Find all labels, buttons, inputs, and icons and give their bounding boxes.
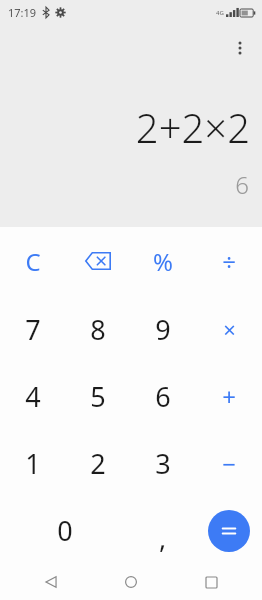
staticText: × — [223, 314, 236, 344]
button[interactable]: 2 — [65, 430, 130, 497]
staticText: 17:19 — [8, 5, 37, 20]
button[interactable]: 1 — [0, 430, 65, 497]
staticText: 2+2×2 — [135, 100, 250, 154]
staticText: % — [153, 245, 173, 278]
button[interactable]: C — [0, 227, 65, 295]
button[interactable]: + — [196, 363, 262, 430]
button[interactable]: Recent apps — [185, 564, 237, 600]
staticText: 2 — [90, 445, 106, 482]
staticText: 5 — [90, 378, 106, 415]
staticText: , — [159, 519, 167, 556]
button[interactable]: 6 — [130, 363, 196, 430]
button[interactable]: Backspace — [65, 227, 130, 295]
button[interactable]: 8 — [65, 295, 130, 363]
staticText: C — [25, 245, 41, 278]
staticText: + — [222, 380, 236, 413]
staticText: 8 — [90, 311, 106, 348]
button[interactable]: × — [196, 295, 262, 363]
button[interactable]: 3 — [130, 430, 196, 497]
staticText: 6 — [155, 378, 171, 415]
button[interactable]: 9 — [130, 295, 196, 363]
button[interactable]: ÷ — [196, 227, 262, 295]
button[interactable]: 5 — [65, 363, 130, 430]
staticText: 6 — [235, 168, 249, 201]
staticText: 4G — [216, 9, 224, 17]
staticText: ÷ — [222, 245, 236, 278]
staticText: − — [222, 447, 236, 480]
button[interactable]: − — [196, 430, 262, 497]
staticText: 4 — [25, 378, 41, 415]
button[interactable]: Back — [25, 564, 77, 600]
button[interactable]: 4 — [0, 363, 65, 430]
staticText: 9 — [155, 311, 171, 348]
staticText: 3 — [155, 445, 171, 482]
button[interactable]: , — [130, 497, 196, 564]
button[interactable]: Home — [105, 564, 157, 600]
button[interactable]: 7 — [0, 295, 65, 363]
button[interactable]: Equals — [208, 510, 250, 552]
staticText: 1 — [25, 445, 41, 482]
button[interactable]: More options — [225, 33, 255, 63]
button[interactable]: % — [130, 227, 196, 295]
staticText: 0 — [57, 512, 73, 549]
button[interactable]: 0 — [0, 497, 130, 564]
staticText: 7 — [25, 311, 41, 348]
